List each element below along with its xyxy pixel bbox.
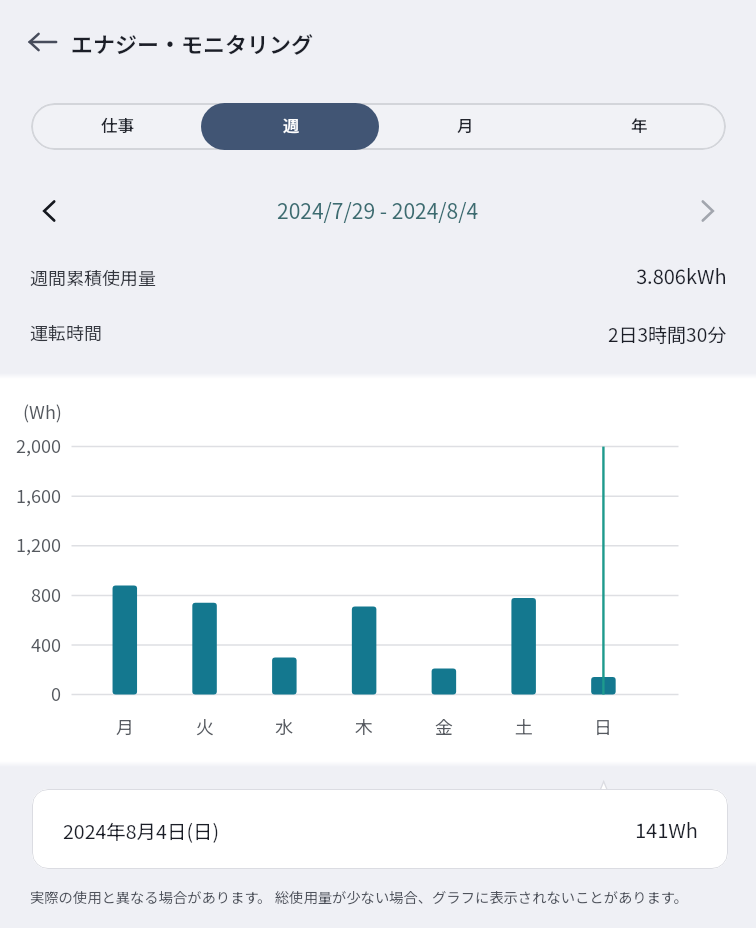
staticText: 141Wh (635, 815, 698, 844)
button[interactable]: 年 (552, 103, 726, 150)
button[interactable]: Next period (685, 188, 731, 234)
staticText: 実際の使用と異なる場合があります。 総使用量が少ない場合、グラフに表示されないこ… (30, 886, 688, 907)
staticText: 運転時間 (30, 319, 102, 345)
staticText: 週間累積使用量 (30, 264, 156, 290)
staticText: 月 (457, 113, 474, 137)
staticText: 400 (31, 631, 61, 657)
button[interactable]: 週 (204, 103, 378, 150)
button[interactable]: 仕事 (31, 103, 204, 150)
staticText: 2,000 (16, 432, 61, 458)
staticText: 2024年8月4日(日) (63, 816, 220, 844)
staticText: エナジー・モニタリング (71, 27, 314, 59)
staticText: 800 (31, 581, 61, 607)
staticText: 1,600 (16, 482, 61, 508)
staticText: 仕事 (101, 113, 134, 137)
staticText: 土 (515, 713, 533, 739)
staticText: 金 (435, 713, 453, 739)
staticText: 水 (275, 713, 293, 739)
staticText: 木 (355, 713, 373, 739)
staticText: 日 (594, 713, 612, 739)
staticText: 0 (51, 680, 61, 706)
button[interactable]: 2024年8月4日(日) (32, 789, 728, 869)
staticText: 2日3時間30分 (608, 320, 727, 348)
staticText: 2024/7/29 - 2024/8/4 (277, 195, 479, 225)
staticText: 3.806kWh (636, 261, 727, 290)
staticText: 火 (196, 713, 214, 739)
staticText: 1,200 (16, 531, 61, 557)
button[interactable]: Previous period (26, 188, 72, 234)
staticText: 月 (116, 713, 134, 739)
staticText: 週 (283, 113, 300, 137)
button[interactable]: Back (16, 16, 68, 68)
staticText: 年 (631, 113, 648, 137)
button[interactable]: 月 (378, 103, 552, 150)
staticText: (Wh) (23, 398, 62, 424)
